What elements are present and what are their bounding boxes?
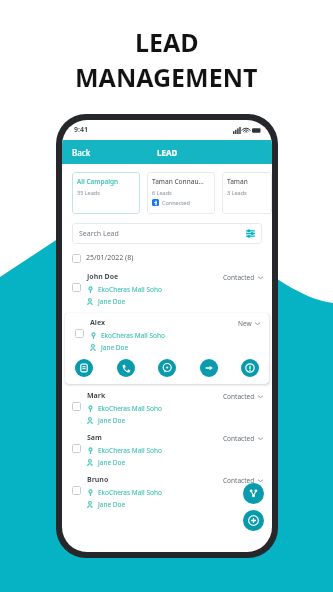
staticText: LEAD <box>135 25 199 59</box>
staticText: MANAGEMENT <box>75 60 258 94</box>
button[interactable]: Select <box>72 253 272 263</box>
button[interactable]: WhatsApp <box>158 359 176 377</box>
button[interactable]: Forward <box>200 359 218 377</box>
staticText: 6 Leads <box>152 189 172 196</box>
staticText: Contacted <box>223 476 255 485</box>
button[interactable]: Select <box>62 429 272 471</box>
staticText: Alex <box>90 318 106 328</box>
button[interactable]: Call <box>117 359 135 377</box>
button[interactable]: Note <box>75 359 93 377</box>
button[interactable]: Taman Connau... <box>147 172 215 214</box>
staticText: EkoCheras Mall Soho <box>98 285 162 294</box>
button[interactable]: Contacted <box>223 476 263 485</box>
staticText: New <box>238 319 252 328</box>
staticText: EkoCheras Mall Soho <box>98 446 162 455</box>
staticText: Bruno <box>87 475 109 485</box>
button[interactable]: Select <box>72 402 81 411</box>
staticText: Contacted <box>223 434 255 443</box>
button[interactable]: Taman <box>222 172 272 214</box>
button[interactable]: Info <box>241 359 259 377</box>
staticText: Contacted <box>223 273 255 282</box>
button[interactable]: Select <box>62 387 272 429</box>
button[interactable]: Select <box>65 313 269 384</box>
button[interactable]: Select <box>72 283 81 292</box>
button[interactable]: New <box>238 319 260 328</box>
button[interactable]: Search Lead <box>72 223 262 244</box>
button[interactable]: Back <box>72 147 91 158</box>
button[interactable]: Contacted <box>223 434 263 443</box>
button[interactable]: Select <box>75 329 84 338</box>
button[interactable]: Select <box>62 471 272 513</box>
staticText: EkoCheras Mall Soho <box>98 404 162 413</box>
staticText: Mark <box>87 391 106 401</box>
button[interactable]: Add lead <box>243 510 264 531</box>
staticText: Jane Doe <box>98 297 126 306</box>
staticText: 3 Leads <box>227 189 247 196</box>
staticText: 25/01/2022 (8) <box>86 253 134 263</box>
staticText: Contacted <box>223 392 255 401</box>
staticText: Sam <box>87 433 102 443</box>
button[interactable]: Contacted <box>223 273 263 282</box>
staticText: EkoCheras Mall Soho <box>98 488 162 497</box>
button[interactable]: Contacted <box>223 392 263 401</box>
staticText: Jane Doe <box>98 416 126 425</box>
staticText: Jane Doe <box>98 500 126 509</box>
staticText: Search Lead <box>79 229 119 239</box>
button[interactable]: All Campaign <box>72 172 140 214</box>
staticText: Jane Doe <box>101 343 129 352</box>
button[interactable]: Select <box>72 444 81 453</box>
staticText: LEAD <box>157 147 178 158</box>
staticText: Taman Connau... <box>152 177 204 186</box>
button[interactable]: Select <box>62 268 272 310</box>
button[interactable]: Select <box>72 486 81 495</box>
button[interactable]: Filter leads <box>243 483 264 504</box>
staticText: 9:41 <box>74 125 88 135</box>
staticText: EkoCheras Mall Soho <box>101 331 165 340</box>
staticText: Taman <box>227 177 248 186</box>
staticText: 35 Leads <box>77 189 100 196</box>
button[interactable]: Select <box>72 254 81 263</box>
staticText: John Doe <box>87 272 119 282</box>
staticText: Jane Doe <box>98 458 126 467</box>
staticText: Connected <box>162 199 190 206</box>
staticText: All Campaign <box>77 177 119 186</box>
